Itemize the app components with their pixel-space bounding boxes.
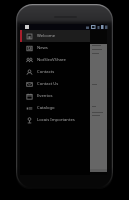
staticText: News xyxy=(37,45,48,51)
staticText: NotSlexVShare xyxy=(37,57,66,63)
button[interactable]: Contact Us xyxy=(20,78,90,90)
button[interactable]: Catalogo xyxy=(20,102,90,114)
staticText: Eventos xyxy=(37,93,53,99)
button[interactable]: Welcome xyxy=(20,30,90,42)
staticText: Contact Us xyxy=(37,81,59,87)
staticText: Locais Importantes xyxy=(37,117,75,123)
staticText: Contacts xyxy=(37,69,55,75)
staticText: Catalogo xyxy=(37,105,55,111)
button[interactable]: Locais Importantes xyxy=(20,114,90,126)
staticText: Welcome xyxy=(37,33,56,39)
button[interactable]: News xyxy=(20,42,90,54)
button[interactable]: NotSlexVShare xyxy=(20,54,90,66)
button[interactable]: Eventos xyxy=(20,90,90,102)
button[interactable]: Contacts xyxy=(20,66,90,78)
